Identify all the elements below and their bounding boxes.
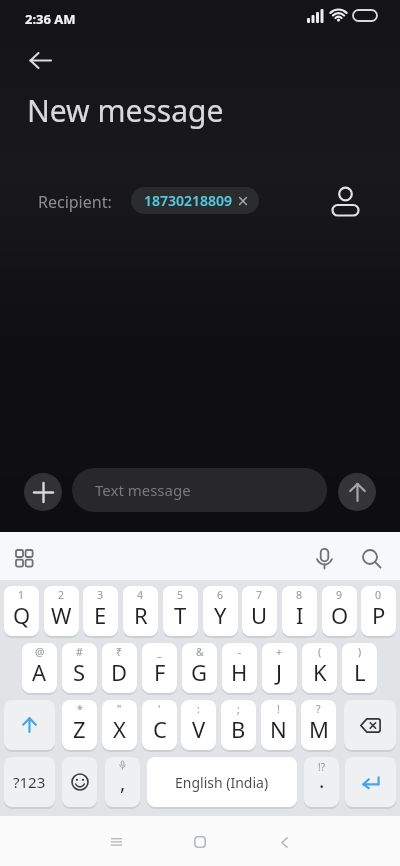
button[interactable] [326, 182, 364, 220]
button[interactable]: ( [302, 643, 337, 693]
staticText: K [313, 657, 327, 687]
button[interactable] [8, 542, 41, 575]
button[interactable]: , [105, 757, 140, 807]
staticText: ( [318, 645, 322, 659]
button[interactable] [24, 473, 62, 511]
button[interactable]: 0 [361, 586, 396, 636]
staticText: ? [316, 702, 321, 716]
staticText: E [94, 600, 107, 630]
staticText: Text message [95, 480, 191, 500]
staticText: X [113, 714, 126, 744]
button[interactable] [100, 826, 132, 858]
button[interactable]: & [182, 643, 217, 693]
staticText: & [196, 645, 204, 659]
staticText: A [32, 657, 47, 687]
staticText: I [296, 600, 304, 630]
staticText: * [77, 702, 83, 716]
staticText: 9 [336, 588, 343, 602]
button[interactable] [4, 700, 55, 750]
button[interactable]: * [62, 700, 97, 750]
staticText: B [231, 714, 246, 744]
button[interactable]: 9 [322, 586, 357, 636]
button[interactable]: English (India) [147, 757, 297, 807]
button[interactable]: - [222, 643, 257, 693]
button[interactable]: 2 [44, 586, 79, 636]
staticText: English (India) [175, 773, 269, 792]
button[interactable]: 3 [83, 586, 118, 636]
staticText: F [154, 657, 166, 687]
button[interactable] [355, 542, 388, 575]
button[interactable]: ₹ [102, 643, 137, 693]
button[interactable]: # [62, 643, 97, 693]
staticText: 18730218809 [144, 191, 233, 210]
button[interactable]: 5 [163, 586, 198, 636]
staticText: ' [158, 702, 161, 716]
staticText: S [73, 657, 86, 687]
button[interactable]: ! [261, 700, 296, 750]
staticText: T [174, 600, 187, 630]
staticText: . [319, 767, 325, 794]
staticText: M [309, 714, 329, 744]
staticText: G [191, 657, 208, 687]
staticText: C [153, 714, 167, 744]
button[interactable]: 8 [282, 586, 317, 636]
staticText: Recipient: [38, 191, 112, 213]
staticText: Z [73, 714, 86, 744]
button[interactable] [344, 700, 396, 750]
button[interactable]: 7 [242, 586, 277, 636]
button[interactable]: ; [221, 700, 256, 750]
button[interactable]: @ [22, 643, 57, 693]
button[interactable]: 1 [4, 586, 39, 636]
button[interactable]: 6 [203, 586, 238, 636]
button[interactable]: ) [342, 643, 377, 693]
staticText: @ [35, 645, 45, 659]
button[interactable] [268, 826, 300, 858]
staticText: 8 [296, 588, 303, 602]
staticText: ) [358, 645, 362, 659]
button[interactable] [20, 42, 60, 78]
button[interactable]: ? [301, 700, 336, 750]
staticText: 1 [18, 588, 25, 602]
staticText: Q [13, 600, 31, 630]
button[interactable] [62, 757, 97, 807]
staticText: New message [27, 90, 224, 131]
button[interactable]: 18730218809 [131, 187, 259, 214]
staticText: U [251, 600, 268, 630]
button[interactable] [345, 757, 396, 807]
button[interactable]: : [181, 700, 216, 750]
staticText: 3 [97, 588, 104, 602]
button[interactable] [308, 542, 341, 575]
staticText: Y [214, 600, 227, 630]
staticText: ₹ [116, 645, 123, 659]
button[interactable]: _ [142, 643, 177, 693]
button[interactable] [184, 826, 216, 858]
staticText: N [270, 714, 287, 744]
staticText: ?123 [13, 772, 46, 792]
button[interactable]: Text message [72, 468, 327, 512]
staticText: - [238, 645, 242, 659]
staticText: 5 [177, 588, 184, 602]
button[interactable]: + [262, 643, 297, 693]
button[interactable]: ' [142, 700, 177, 750]
staticText: 4 [137, 588, 144, 602]
staticText: ; [237, 702, 240, 716]
staticText: V [192, 714, 206, 744]
button[interactable] [338, 473, 376, 511]
button[interactable]: !? [304, 757, 339, 807]
button[interactable]: 4 [123, 586, 158, 636]
staticText: O [331, 600, 349, 630]
staticText: P [372, 600, 386, 630]
staticText: !? [318, 760, 326, 774]
button[interactable]: ?123 [4, 757, 55, 807]
staticText: " [117, 702, 122, 716]
button[interactable]: " [102, 700, 137, 750]
staticText: + [276, 645, 283, 659]
staticText: 0 [375, 588, 382, 602]
staticText: 6 [217, 588, 224, 602]
staticText: D [111, 657, 128, 687]
staticText: : [197, 702, 200, 716]
staticText: R [134, 600, 148, 630]
staticText: J [276, 657, 283, 687]
staticText: H [231, 657, 248, 687]
staticText: ! [277, 702, 280, 716]
